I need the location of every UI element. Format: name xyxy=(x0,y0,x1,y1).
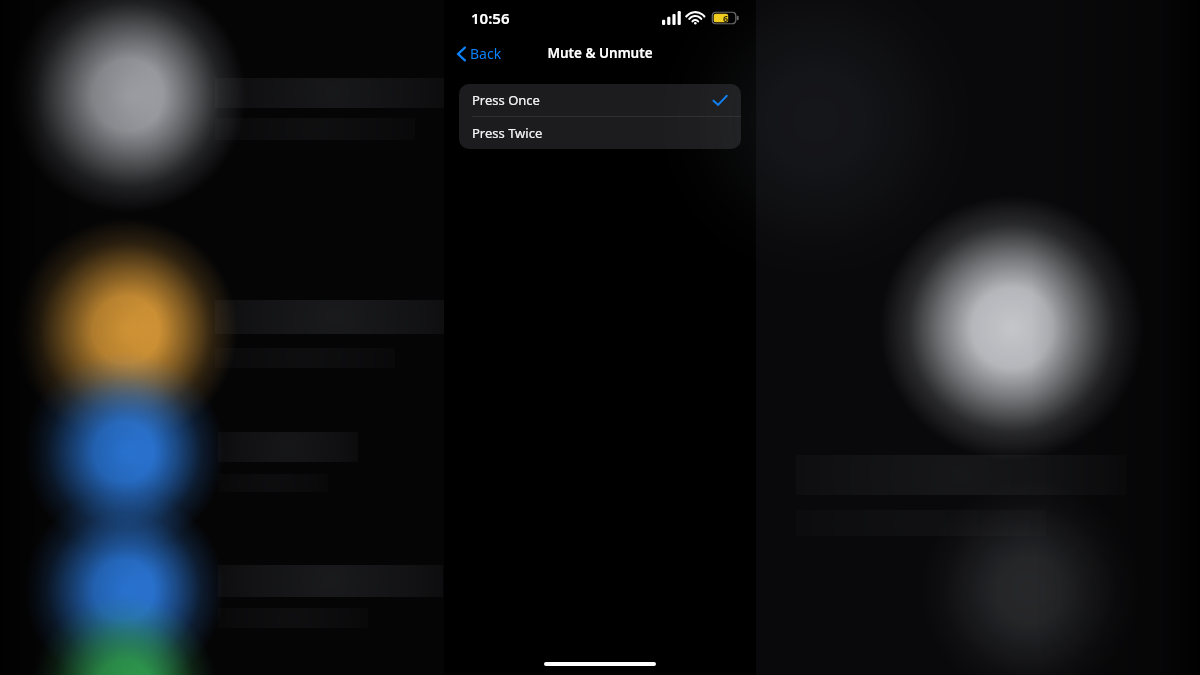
staticText: 10:56 xyxy=(471,8,510,28)
button[interactable]: Back xyxy=(452,40,507,67)
button[interactable]: Press Twice xyxy=(459,117,741,149)
staticText: Press Once xyxy=(472,91,540,109)
other: Selected xyxy=(713,95,727,106)
staticText: Back xyxy=(470,44,502,63)
staticText: 68 xyxy=(723,12,734,24)
staticText: Mute & Unmute xyxy=(547,44,653,62)
button[interactable]: Press Once xyxy=(459,84,741,116)
staticText: Press Twice xyxy=(472,124,543,142)
